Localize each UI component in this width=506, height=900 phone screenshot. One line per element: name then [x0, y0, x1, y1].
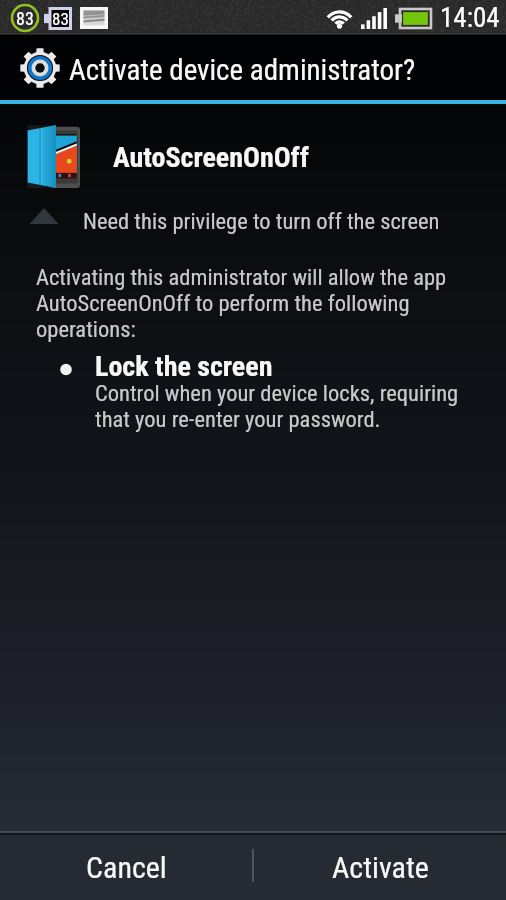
staticText: Activate device administrator?	[69, 53, 416, 87]
button[interactable]: Device administrator info	[20, 48, 60, 88]
button[interactable]: Need this privilege to turn off the scre…	[0, 208, 506, 234]
staticText: Activate	[332, 850, 429, 885]
staticText: 83	[16, 8, 34, 29]
staticText: 14:04	[440, 2, 500, 34]
staticText: Activating this administrator will allow…	[36, 264, 452, 342]
staticText: Cancel	[86, 850, 167, 885]
button[interactable]: Activate	[254, 835, 506, 900]
button[interactable]: AutoScreenOnOff	[0, 124, 506, 190]
staticText: AutoScreenOnOff	[113, 141, 309, 174]
staticText: Need this privilege to turn off the scre…	[83, 208, 440, 234]
staticText: Lock the screen	[95, 350, 273, 383]
staticText: 83	[52, 9, 69, 29]
staticText: Control when your device locks, requirin…	[95, 380, 476, 432]
button[interactable]: Cancel	[0, 835, 252, 900]
